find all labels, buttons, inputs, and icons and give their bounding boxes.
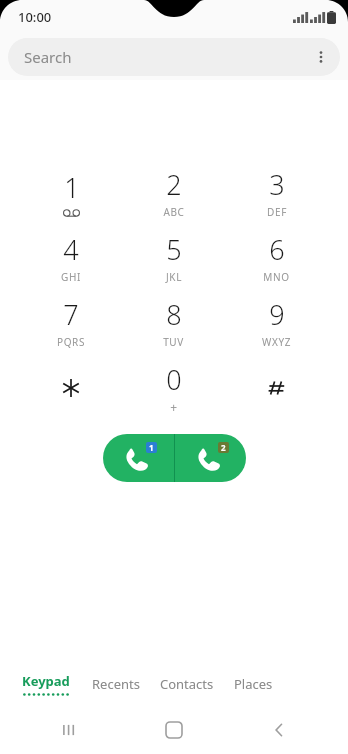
staticText: 7 — [63, 296, 79, 333]
button[interactable] — [20, 355, 122, 420]
button[interactable]: 3 — [225, 160, 328, 225]
staticText: + — [170, 399, 178, 415]
button[interactable]: 2 — [122, 160, 225, 225]
staticText: 5 — [166, 231, 182, 268]
button[interactable]: 9 — [225, 290, 328, 355]
staticText: GHI — [61, 270, 81, 284]
button[interactable]: 8 — [122, 290, 225, 355]
staticText: JKL — [166, 270, 182, 284]
staticText: 9 — [269, 296, 285, 333]
staticText: WXYZ — [262, 335, 291, 349]
button[interactable]: 1 — [20, 160, 122, 225]
staticText: Recents — [92, 675, 140, 693]
staticText: 6 — [269, 231, 285, 268]
staticText: 4 — [63, 231, 79, 268]
button[interactable]: Search — [8, 38, 340, 76]
button[interactable] — [225, 355, 328, 420]
button[interactable]: Keypad — [22, 668, 70, 700]
button[interactable]: 6 — [225, 225, 328, 290]
button[interactable]: Recents — [92, 671, 140, 697]
staticText: MNO — [263, 270, 290, 284]
staticText: 1 — [149, 442, 154, 453]
button[interactable]: Contacts — [160, 671, 214, 697]
staticText: TUV — [163, 335, 184, 349]
button[interactable]: 4 — [20, 225, 122, 290]
button[interactable]: Call with SIM 1 — [103, 434, 174, 482]
staticText: PQRS — [57, 335, 85, 349]
button[interactable]: Call with SIM 2 — [175, 434, 246, 482]
button[interactable]: Back — [256, 707, 302, 753]
staticText: Search — [24, 47, 72, 67]
button[interactable]: 7 — [20, 290, 122, 355]
staticText: ABC — [163, 205, 185, 219]
staticText: 10:00 — [18, 8, 52, 26]
staticText: Contacts — [160, 675, 214, 693]
staticText: DEF — [267, 205, 287, 219]
staticText: 8 — [166, 296, 182, 333]
button[interactable]: Recent apps — [46, 707, 92, 753]
button[interactable]: 5 — [122, 225, 225, 290]
button[interactable]: 0 — [122, 355, 225, 420]
staticText: Keypad — [22, 672, 70, 690]
staticText: 2 — [221, 442, 226, 453]
staticText: Places — [234, 675, 273, 693]
staticText: 3 — [269, 166, 285, 203]
staticText: 0 — [166, 361, 182, 398]
button[interactable]: Places — [234, 671, 273, 697]
staticText: 2 — [166, 166, 182, 203]
button[interactable]: More options — [302, 38, 340, 76]
button[interactable]: Home — [151, 707, 197, 753]
staticText: 1 — [64, 169, 80, 206]
